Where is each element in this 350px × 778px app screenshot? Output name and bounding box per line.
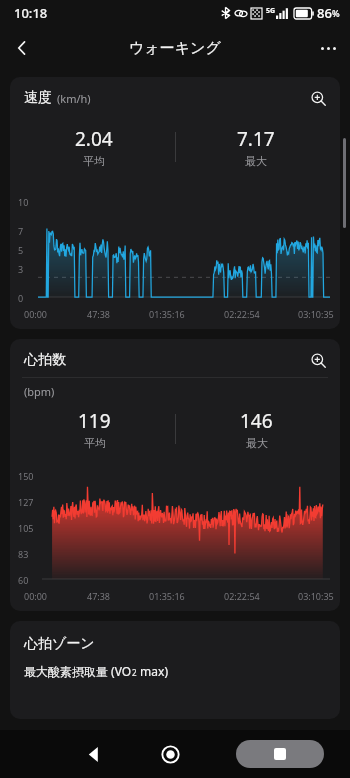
staticText: 119 bbox=[78, 408, 111, 434]
staticText: 47:38 bbox=[87, 308, 111, 320]
staticText: 2 bbox=[132, 667, 137, 678]
staticText: 10 bbox=[18, 196, 29, 208]
staticText: 7.17 bbox=[237, 126, 275, 152]
button[interactable]: Back bbox=[74, 734, 114, 774]
staticText: 146 bbox=[240, 408, 273, 434]
staticText: 02:22:54 bbox=[224, 308, 260, 320]
staticText: 83 bbox=[18, 548, 29, 560]
staticText: 心拍数 bbox=[24, 351, 66, 369]
staticText: 5G bbox=[266, 6, 276, 16]
staticText: 7 bbox=[18, 225, 24, 237]
staticText: (km/h) bbox=[57, 91, 91, 106]
staticText: 最大酸素摂取量 (VO bbox=[24, 663, 132, 679]
staticText: 03:10:35 bbox=[298, 590, 334, 602]
staticText: 86 bbox=[317, 4, 332, 22]
button[interactable]: 心拍数 bbox=[10, 339, 340, 611]
staticText: 150 bbox=[18, 470, 34, 482]
staticText: 105 bbox=[18, 522, 34, 534]
staticText: 最大 bbox=[246, 436, 268, 450]
staticText: 2.04 bbox=[75, 126, 113, 152]
button[interactable]: 心拍ゾーン bbox=[10, 621, 340, 719]
staticText: 3 bbox=[18, 263, 24, 275]
button[interactable]: Back bbox=[0, 26, 44, 70]
staticText: 心拍ゾーン bbox=[24, 635, 95, 653]
button[interactable]: Zoom in bbox=[302, 344, 334, 376]
staticText: 01:35:16 bbox=[149, 308, 185, 320]
button[interactable]: Zoom in bbox=[302, 82, 334, 114]
staticText: % bbox=[332, 7, 340, 19]
staticText: 60 bbox=[18, 574, 29, 586]
staticText: ウォーキング bbox=[129, 39, 221, 58]
staticText: 02:22:54 bbox=[224, 590, 260, 602]
button[interactable]: 速度 bbox=[10, 77, 340, 329]
staticText: max) bbox=[137, 663, 169, 679]
staticText: 平均 bbox=[83, 154, 105, 168]
staticText: 速度 bbox=[24, 89, 52, 107]
staticText: 5 bbox=[18, 244, 24, 256]
staticText: 00:00 bbox=[24, 590, 48, 602]
button[interactable]: Home bbox=[150, 734, 190, 774]
staticText: (bpm) bbox=[24, 384, 55, 399]
staticText: 01:35:16 bbox=[149, 590, 185, 602]
staticText: 0 bbox=[18, 292, 24, 304]
staticText: 03:10:35 bbox=[298, 308, 334, 320]
button[interactable]: More options bbox=[306, 26, 350, 70]
staticText: 00:00 bbox=[24, 308, 48, 320]
staticText: 127 bbox=[18, 496, 34, 508]
staticText: 最大 bbox=[245, 154, 267, 168]
staticText: 平均 bbox=[84, 436, 106, 450]
staticText: 10:18 bbox=[14, 4, 48, 22]
staticText: 47:38 bbox=[87, 590, 111, 602]
button[interactable]: Recents bbox=[236, 740, 324, 768]
